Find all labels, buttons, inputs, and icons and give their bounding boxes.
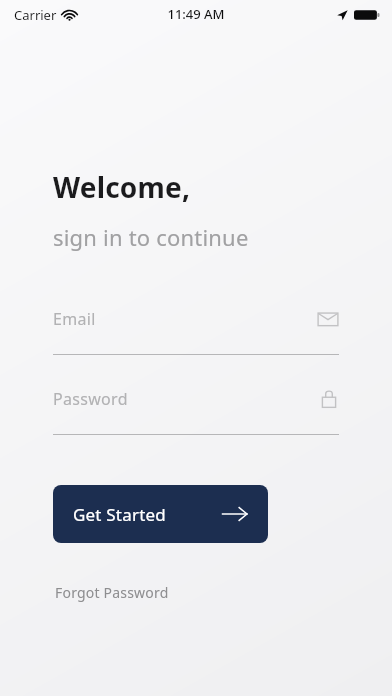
staticText: Get Started <box>73 503 222 526</box>
staticText: Forgot Password <box>55 583 169 602</box>
button[interactable]: Forgot Password <box>53 579 171 606</box>
button[interactable]: Email <box>53 304 339 355</box>
staticText: Password <box>53 388 319 410</box>
staticText: Email <box>53 308 317 330</box>
button[interactable]: Get Started <box>53 485 268 543</box>
staticText: 11:49 AM <box>167 5 225 23</box>
staticText: Carrier <box>14 6 57 24</box>
staticText: sign in to continue <box>53 222 249 252</box>
button[interactable]: Password <box>53 384 339 435</box>
staticText: Welcome, <box>53 168 191 206</box>
other: Email <box>317 310 339 328</box>
other: Password <box>319 388 339 410</box>
